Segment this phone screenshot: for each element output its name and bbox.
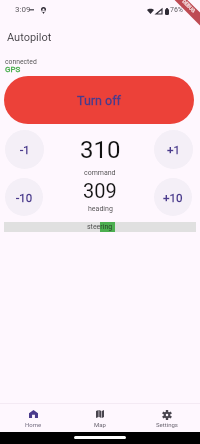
staticText: Map <box>94 421 106 428</box>
button[interactable]: Turn off <box>4 76 194 124</box>
button[interactable]: Map <box>67 404 133 432</box>
staticText: -1 <box>20 143 30 156</box>
staticText: GPS <box>5 65 21 74</box>
staticText: +10 <box>163 191 183 204</box>
staticText: command <box>84 169 116 177</box>
staticText: Home <box>25 421 42 428</box>
staticText: 310 <box>80 136 121 164</box>
staticText: connected <box>5 58 37 66</box>
staticText: Autopilot <box>7 31 52 44</box>
button[interactable]: +10 <box>154 178 192 216</box>
staticText: heading <box>88 205 113 213</box>
staticText: 309 <box>83 179 117 202</box>
staticText: -10 <box>16 191 33 204</box>
staticText: Settings <box>156 421 178 428</box>
button[interactable]: Settings <box>134 404 200 432</box>
staticText: steering <box>87 223 113 231</box>
staticText: +1 <box>167 143 180 156</box>
button[interactable]: -10 <box>5 178 43 216</box>
button[interactable]: +1 <box>154 130 193 169</box>
staticText: Turn off <box>77 93 121 108</box>
button[interactable]: -1 <box>5 130 44 169</box>
staticText: 76% <box>170 6 183 14</box>
staticText: 3:09 <box>15 5 31 14</box>
staticText: DEBUG <box>181 0 197 14</box>
button[interactable]: Home <box>0 404 66 432</box>
